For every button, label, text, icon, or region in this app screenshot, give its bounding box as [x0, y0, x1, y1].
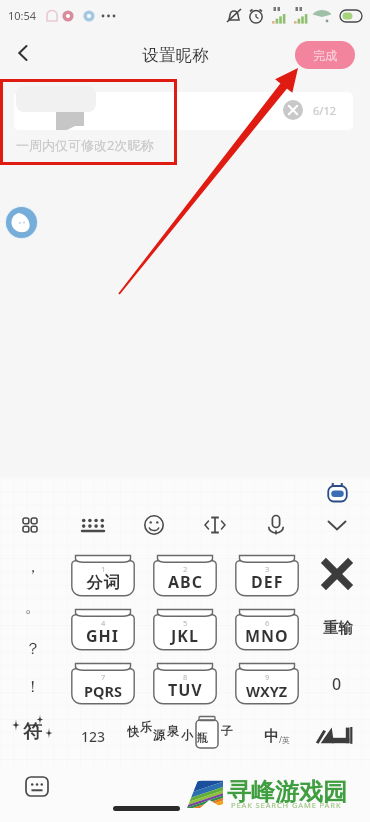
staticText: 乐	[140, 719, 152, 734]
staticText: 9	[265, 672, 270, 682]
staticText: GHI	[86, 625, 120, 647]
button[interactable]: 8	[153, 661, 217, 705]
staticText: MNO	[245, 625, 289, 647]
button[interactable]: 3	[235, 553, 299, 597]
staticText: 123	[81, 727, 106, 746]
staticText: 完成	[313, 48, 337, 63]
button[interactable]: ！	[11, 670, 55, 704]
button[interactable]: AI assistant	[325, 480, 350, 505]
button[interactable]: Switch input method	[25, 776, 49, 797]
staticText: PQRS	[84, 681, 122, 701]
button[interactable]: 。	[11, 590, 55, 624]
staticText: 瓶	[197, 731, 208, 745]
staticText: 4	[101, 618, 106, 628]
staticText: /英	[279, 734, 290, 745]
button[interactable]: Cursor	[193, 503, 237, 545]
staticText: 5	[183, 618, 188, 628]
staticText: WXYZ	[246, 681, 288, 701]
button[interactable]: Clear	[14, 92, 353, 130]
staticText: 重输	[323, 619, 353, 638]
staticText: 分词	[86, 573, 120, 593]
staticText: 泉	[167, 723, 179, 738]
button[interactable]: 1	[71, 553, 135, 597]
staticText: 。	[25, 597, 41, 617]
staticText: JKL	[171, 625, 199, 647]
button[interactable]: 123	[71, 718, 115, 754]
button[interactable]: 中	[255, 718, 299, 754]
staticText: 0	[332, 673, 342, 695]
button[interactable]: Back	[2, 30, 44, 76]
staticText: 7	[101, 672, 106, 682]
button[interactable]: 重输	[311, 610, 365, 646]
staticText: 小	[181, 727, 193, 742]
button[interactable]: 2	[153, 553, 217, 597]
staticText: 快	[127, 724, 139, 739]
button[interactable]: ，	[11, 550, 55, 584]
staticText: 2	[183, 564, 188, 574]
staticText: ？	[25, 639, 41, 659]
staticText: ！	[25, 677, 41, 697]
button[interactable]: 6	[235, 607, 299, 651]
staticText: 6	[265, 618, 270, 628]
staticText: 源	[153, 727, 165, 742]
button[interactable]: Keyboard layout	[71, 503, 115, 545]
staticText: DEF	[251, 571, 284, 593]
button[interactable]: Panel	[8, 503, 52, 545]
button[interactable]: Delete	[315, 554, 359, 594]
staticText: PEAK SEARCH GAME PARK	[231, 800, 342, 810]
button[interactable]: 0	[315, 666, 359, 702]
button[interactable]: 符	[8, 714, 56, 758]
button[interactable]: 完成	[295, 41, 355, 69]
staticText: 8	[183, 672, 188, 682]
staticText: 中	[264, 727, 279, 746]
staticText: 1	[101, 564, 106, 574]
staticText: 设置昵称	[142, 45, 210, 66]
button[interactable]: Enter	[312, 718, 362, 754]
staticText: 一周内仅可修改2次昵称	[16, 136, 154, 154]
button[interactable]: Hide keyboard	[315, 503, 359, 545]
staticText: TUV	[168, 679, 203, 701]
staticText: 3	[265, 564, 270, 574]
button[interactable]: 5	[153, 607, 217, 651]
staticText: 子	[221, 723, 233, 738]
staticText: ，	[25, 557, 41, 577]
staticText: 寻峰游戏园	[227, 777, 347, 807]
button[interactable]: ？	[11, 632, 55, 666]
button[interactable]: 7	[71, 661, 135, 705]
staticText: 6/12	[313, 103, 336, 118]
button[interactable]: Voice input	[254, 503, 298, 545]
button[interactable]: 4	[71, 607, 135, 651]
staticText: 10:54	[8, 8, 37, 23]
button[interactable]: Space	[125, 714, 245, 756]
button[interactable]: Emoji	[132, 503, 176, 545]
button[interactable]: 9	[235, 661, 299, 705]
button[interactable]: Assistant	[5, 206, 38, 239]
button[interactable]: Clear	[283, 100, 303, 120]
staticText: ABC	[168, 571, 203, 593]
staticText: 符	[23, 720, 42, 744]
